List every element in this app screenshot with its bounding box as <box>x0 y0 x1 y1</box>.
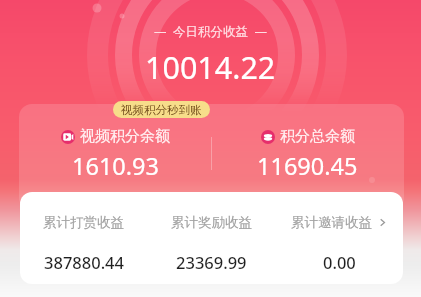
button[interactable]: 视频积分秒到账 <box>113 101 210 118</box>
staticText: 累计奖励收益 <box>171 214 252 231</box>
staticText: 累计打赏收益 <box>43 214 124 231</box>
staticText: 11690.45 <box>257 150 358 182</box>
staticText: 累计邀请收益 <box>291 214 372 231</box>
staticText: 23369.99 <box>176 251 247 273</box>
staticText: 视频积分秒到账 <box>121 103 202 117</box>
button[interactable]: 积分总余额 <box>211 127 404 182</box>
button[interactable]: 累计打赏收益 <box>20 192 403 284</box>
staticText: — 今日积分收益 — <box>154 23 268 40</box>
staticText: 1610.93 <box>72 150 159 182</box>
button[interactable]: 视频积分余额 <box>19 127 211 182</box>
staticText: 0.00 <box>323 251 356 273</box>
staticText: 视频积分余额 <box>80 127 170 146</box>
staticText: 387880.44 <box>44 251 124 273</box>
staticText: 10014.22 <box>145 46 276 88</box>
staticText: 积分总余额 <box>280 127 355 146</box>
